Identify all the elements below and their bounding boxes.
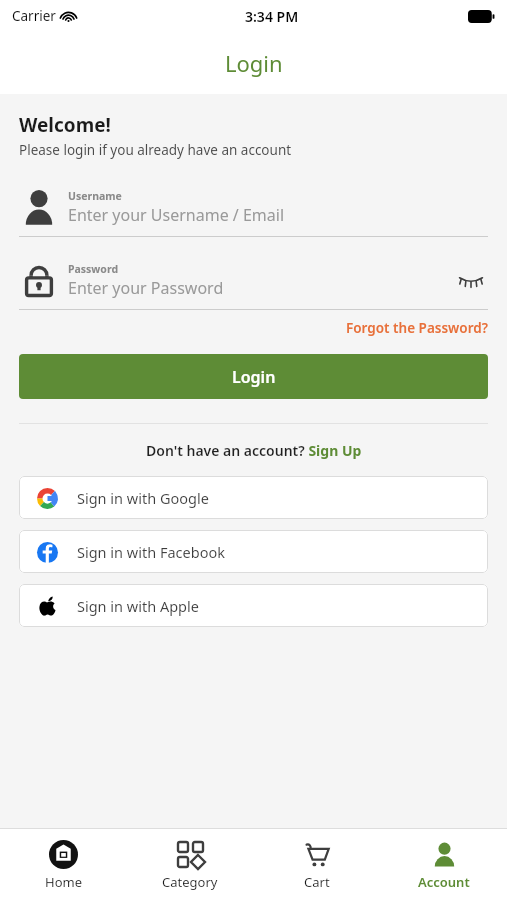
button[interactable]: Cart: [253, 829, 380, 900]
staticText: Please login if you already have an acco…: [19, 141, 292, 159]
button[interactable]: Show password: [454, 263, 488, 297]
staticText: Home: [45, 873, 82, 891]
staticText: Don't have an account? Sign Up: [146, 441, 362, 460]
button[interactable]: Login: [19, 354, 488, 399]
staticText: Forgot the Password?: [346, 319, 488, 337]
button[interactable]: Sign in with Google: [19, 476, 488, 519]
staticText: Enter your Password: [68, 277, 224, 299]
staticText: Enter your Username / Email: [68, 204, 285, 226]
button[interactable]: Category: [126, 829, 253, 900]
button[interactable]: Sign in with Facebook: [19, 530, 488, 573]
staticText: Username: [68, 189, 122, 203]
staticText: Sign in with Facebook: [77, 542, 225, 562]
button[interactable]: Don't have an account? Sign Up: [146, 441, 362, 460]
staticText: Login: [225, 48, 283, 78]
staticText: Category: [162, 873, 218, 891]
staticText: Password: [68, 262, 119, 276]
button[interactable]: Sign in with Apple: [19, 584, 488, 627]
staticText: Sign in with Google: [77, 488, 209, 508]
button[interactable]: Home: [0, 829, 126, 900]
staticText: Welcome!: [19, 112, 111, 138]
button[interactable]: Forgot the Password?: [346, 319, 488, 337]
staticText: Cart: [304, 873, 330, 891]
staticText: Account: [418, 873, 470, 891]
staticText: Login: [232, 366, 276, 388]
staticText: Carrier: [12, 7, 56, 25]
button[interactable]: Account: [380, 829, 507, 900]
staticText: Sign in with Apple: [77, 596, 199, 616]
staticText: 3:34 PM: [245, 7, 299, 26]
